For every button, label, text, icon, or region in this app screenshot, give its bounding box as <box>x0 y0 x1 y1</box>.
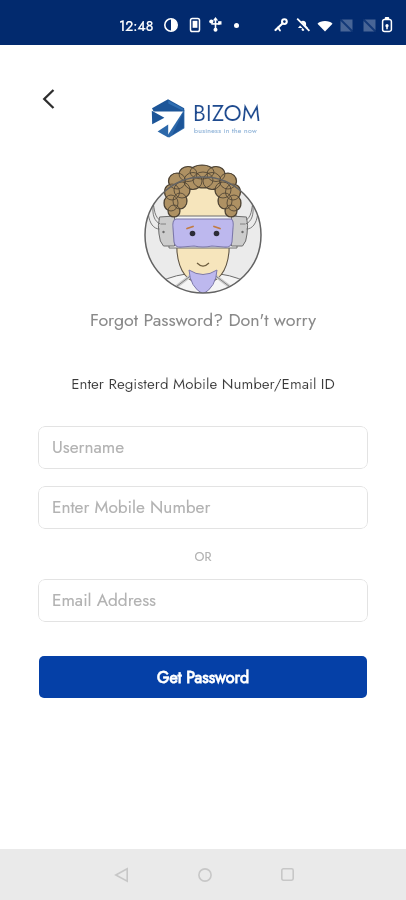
staticText: Enter Registerd Mobile Number/Email ID <box>0 373 406 395</box>
button[interactable]: Back <box>100 853 143 896</box>
button[interactable]: Username <box>38 426 368 469</box>
button[interactable]: Recent apps <box>266 853 309 896</box>
button[interactable]: Back <box>31 81 67 117</box>
staticText: Enter Mobile Number <box>52 495 211 520</box>
button[interactable]: Get Password <box>39 656 367 698</box>
staticText: 12:48 <box>119 16 154 36</box>
staticText: BIZOM <box>193 96 261 129</box>
staticText: Email Address <box>52 588 156 613</box>
button[interactable]: Enter Mobile Number <box>38 486 368 529</box>
staticText: Get Password <box>157 666 250 689</box>
staticText: OR <box>0 548 406 566</box>
button[interactable]: Home <box>183 853 226 896</box>
staticText: business in the now <box>194 126 257 136</box>
button[interactable]: Email Address <box>38 579 368 622</box>
staticText: Username <box>52 435 124 460</box>
staticText: Forgot Password? Don't worry <box>0 307 406 333</box>
